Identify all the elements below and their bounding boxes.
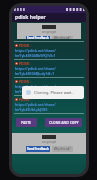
staticText: https://pdisk.net/share/lmYyk4SKG6BJudy?…: [15, 66, 84, 76]
button[interactable]: PASTE: [16, 118, 37, 127]
button[interactable]: PDISK :: [12, 96, 86, 113]
button[interactable]: Why this ad?: [52, 146, 73, 152]
staticText: Send feedback: [27, 36, 49, 39]
staticText: Why this ad?: [54, 36, 71, 39]
staticText: Why this ad?: [54, 147, 71, 151]
button[interactable]: Cloning. Please wait..: [22, 86, 84, 99]
staticText: on google: [42, 140, 57, 144]
staticText: PDISK :: [19, 97, 31, 102]
staticText: https://pdisk.net/share/lmYyk4SUbLyhJGE5: [15, 102, 84, 112]
button[interactable]: Send feedback: [26, 36, 50, 39]
staticText: PDISK :: [19, 43, 31, 48]
staticText: PDISK :: [19, 79, 31, 84]
staticText: pdisk helper: [15, 14, 46, 21]
button[interactable]: Send feedback: [26, 146, 50, 152]
staticText: on google: [42, 30, 57, 34]
staticText: PASTE: [21, 120, 32, 125]
button[interactable]: PDISK :: [12, 42, 86, 59]
button[interactable]: Advertisement: [12, 133, 86, 154]
staticText: https://pdisk.net/share/lmYyk4SKG6Bc7dw?…: [15, 84, 84, 94]
staticText: CLONE AND COPY: [49, 120, 79, 125]
button[interactable]: Why this ad?: [52, 36, 73, 39]
staticText: Send feedback: [27, 147, 49, 151]
staticText: https://pdisk.net/share/lmYyk4SKG6Bb9fKJ…: [15, 48, 84, 58]
button[interactable]: CLONE AND COPY: [45, 118, 82, 127]
staticText: PDISK :: [19, 61, 31, 66]
button[interactable]: Advertisement: [17, 23, 81, 39]
button[interactable]: PDISK :: [12, 78, 86, 95]
staticText: Cloning. Please wait..: [34, 90, 74, 95]
button[interactable]: PDISK :: [12, 60, 86, 77]
